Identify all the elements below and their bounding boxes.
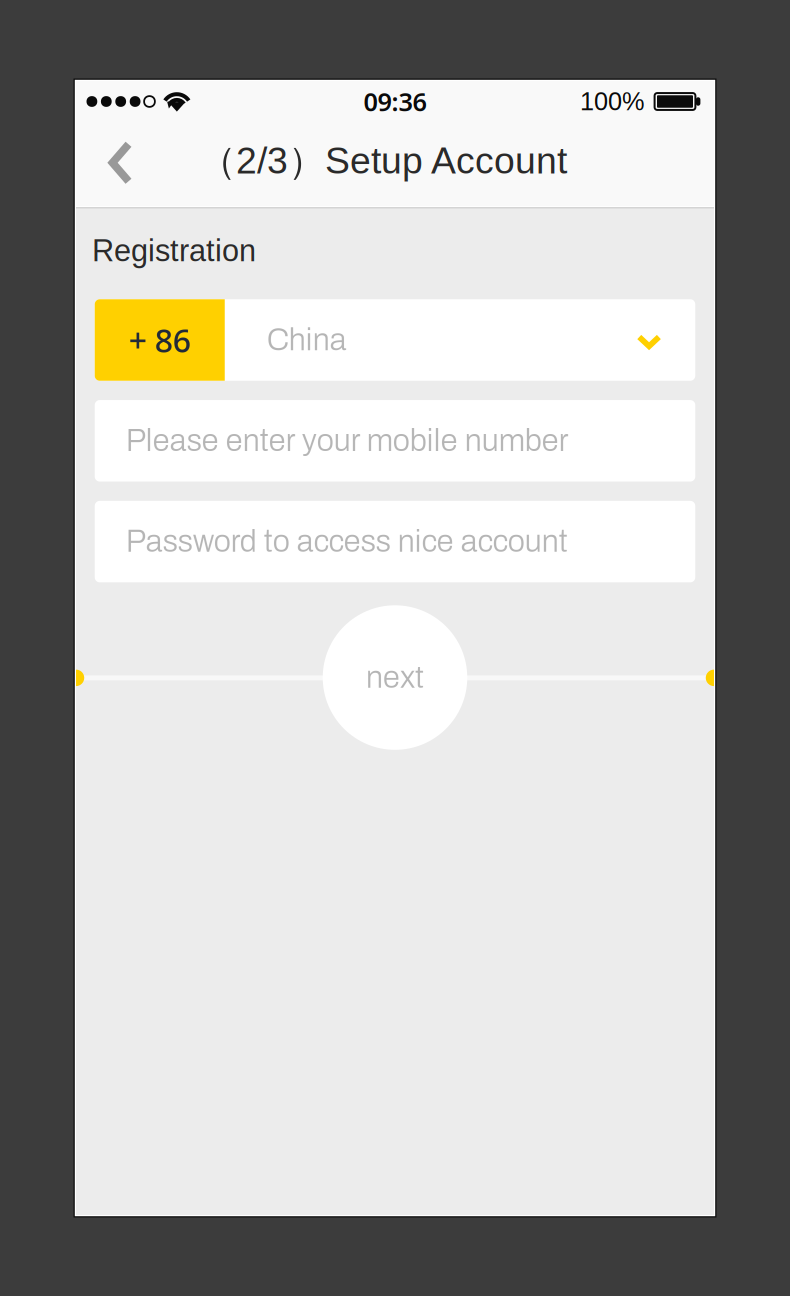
- staticText: Please enter your mobile number: [126, 424, 569, 457]
- button[interactable]: next: [323, 605, 467, 750]
- staticText: Registration: [92, 233, 256, 268]
- staticText: + 86: [129, 318, 191, 362]
- staticText: （2/3）Setup Account: [199, 137, 567, 184]
- button[interactable]: + 86: [95, 299, 695, 381]
- button[interactable]: Please enter your mobile number: [95, 400, 695, 482]
- staticText: China: [267, 323, 347, 357]
- staticText: Password to access nice account: [126, 525, 568, 558]
- button[interactable]: Password to access nice account: [95, 501, 695, 582]
- button[interactable]: Back: [86, 122, 154, 206]
- staticText: next: [366, 661, 424, 694]
- staticText: 100%: [580, 87, 645, 116]
- staticText: 09:36: [363, 84, 426, 119]
